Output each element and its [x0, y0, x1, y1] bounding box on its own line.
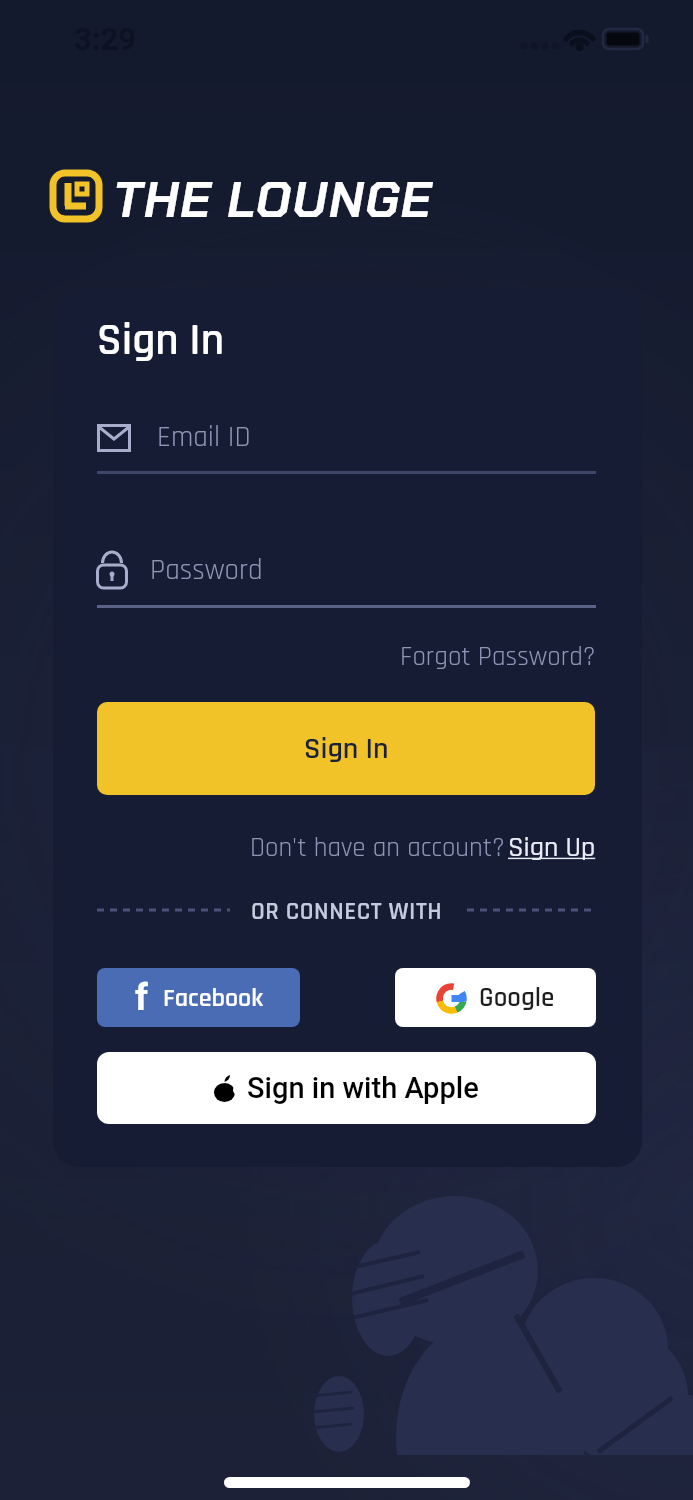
button[interactable]: f	[97, 968, 300, 1027]
button[interactable]: Google	[395, 968, 596, 1027]
button[interactable]: Sign in with Apple	[97, 1052, 596, 1124]
button[interactable]: Sign Up	[508, 830, 596, 866]
staticText: Don't have an account?	[250, 831, 505, 865]
staticText: Sign In	[97, 312, 224, 369]
staticText: THE LOUNGE	[113, 167, 433, 232]
staticText: Forgot Password?	[400, 640, 596, 674]
staticText: f	[135, 977, 148, 1019]
staticText: Facebook	[163, 982, 263, 1015]
staticText: Google	[479, 981, 555, 1015]
staticText: 3:29	[74, 21, 137, 57]
button[interactable]: Forgot Password?	[97, 640, 596, 674]
button[interactable]: Sign In	[97, 702, 595, 795]
staticText: Password	[150, 552, 263, 589]
staticText: Sign In	[304, 730, 389, 768]
staticText: Sign in with Apple	[247, 1071, 479, 1105]
staticText: Sign Up	[508, 830, 596, 866]
staticText: OR CONNECT WITH	[251, 896, 443, 928]
staticText: Email ID	[157, 419, 251, 456]
